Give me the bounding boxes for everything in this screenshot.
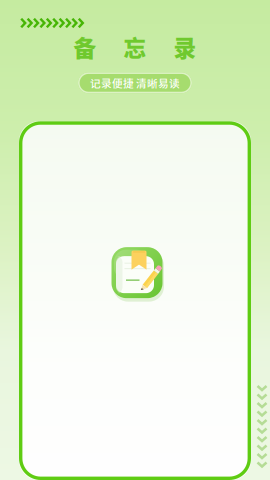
button[interactable]: 新建备忘录: [106, 242, 168, 304]
staticText: 记录便捷 清晰易读: [90, 75, 180, 90]
staticText: 备忘录: [73, 30, 196, 63]
